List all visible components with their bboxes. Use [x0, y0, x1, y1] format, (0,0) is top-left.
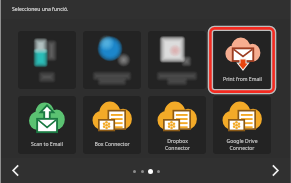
button[interactable] — [83, 31, 141, 89]
button[interactable]: Next page — [260, 158, 291, 183]
staticText: Google Drive Connector — [226, 138, 258, 151]
button[interactable]: Google Drive Connector — [213, 96, 271, 154]
button[interactable] — [18, 31, 76, 89]
staticText: Box Connector — [94, 141, 130, 148]
button[interactable]: Dropbox Connector — [148, 96, 206, 154]
button[interactable]: Scan to Email — [18, 96, 76, 154]
button[interactable] — [148, 31, 206, 89]
button[interactable]: Previous page — [0, 158, 31, 183]
staticText: Scan to Email — [31, 141, 63, 148]
button[interactable]: Print from Email — [213, 31, 271, 89]
button[interactable]: Box Connector — [83, 96, 141, 154]
staticText: Seleccioneu una funció. — [12, 6, 69, 13]
staticText: Print from Email — [223, 76, 262, 83]
staticText: Dropbox Connector — [165, 138, 190, 151]
